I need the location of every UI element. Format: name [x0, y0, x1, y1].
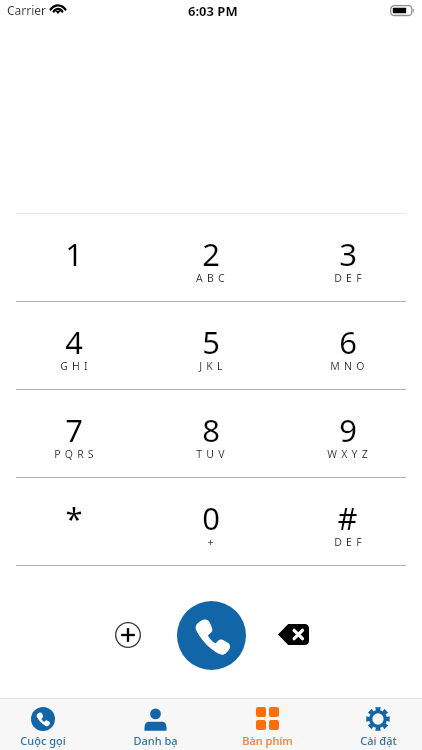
staticText: *: [65, 497, 83, 539]
staticText: PQRS: [54, 447, 98, 461]
button[interactable]: 5: [142, 302, 279, 389]
staticText: #: [337, 497, 358, 539]
button[interactable]: Bàn phím: [215, 699, 319, 750]
button[interactable]: Add contact: [108, 615, 148, 655]
staticText: 2: [202, 233, 220, 275]
staticText: 6: [339, 321, 357, 363]
staticText: Bàn phím: [242, 733, 293, 748]
button[interactable]: *: [6, 478, 142, 565]
staticText: 8: [202, 409, 220, 451]
staticText: ABC: [196, 271, 229, 285]
button[interactable]: 0: [142, 478, 279, 565]
staticText: 3: [339, 233, 357, 275]
button[interactable]: 6: [279, 302, 416, 389]
button[interactable]: 1: [6, 214, 142, 301]
staticText: Danh bạ: [133, 733, 178, 748]
staticText: 0: [202, 497, 220, 539]
staticText: JKL: [199, 359, 227, 373]
staticText: TUV: [196, 447, 229, 461]
button[interactable]: 4: [6, 302, 142, 389]
staticText: MNO: [330, 359, 369, 373]
staticText: 7: [65, 409, 83, 451]
staticText: Cài đặt: [360, 733, 397, 748]
button[interactable]: Danh bạ: [103, 699, 207, 750]
staticText: WXYZ: [327, 447, 372, 461]
staticText: DEF: [334, 535, 366, 549]
staticText: Carrier: [7, 2, 47, 18]
button[interactable]: 8: [142, 390, 279, 477]
staticText: Cuộc gọi: [20, 733, 66, 748]
staticText: GHI: [60, 359, 92, 373]
button[interactable]: Call: [177, 601, 246, 670]
button[interactable]: 9: [279, 390, 416, 477]
button[interactable]: 3: [279, 214, 416, 301]
button[interactable]: Cài đặt: [326, 699, 422, 750]
staticText: 9: [339, 409, 357, 451]
staticText: 5: [202, 321, 220, 363]
button[interactable]: Backspace: [271, 612, 316, 657]
staticText: DEF: [334, 271, 366, 285]
button[interactable]: 7: [6, 390, 142, 477]
button[interactable]: #: [279, 478, 416, 565]
staticText: 4: [65, 321, 83, 363]
staticText: 6:03 PM: [188, 2, 238, 20]
button[interactable]: Cuộc gọi: [0, 699, 95, 750]
button[interactable]: 2: [142, 214, 279, 301]
staticText: +: [207, 535, 218, 549]
staticText: 1: [65, 233, 83, 275]
